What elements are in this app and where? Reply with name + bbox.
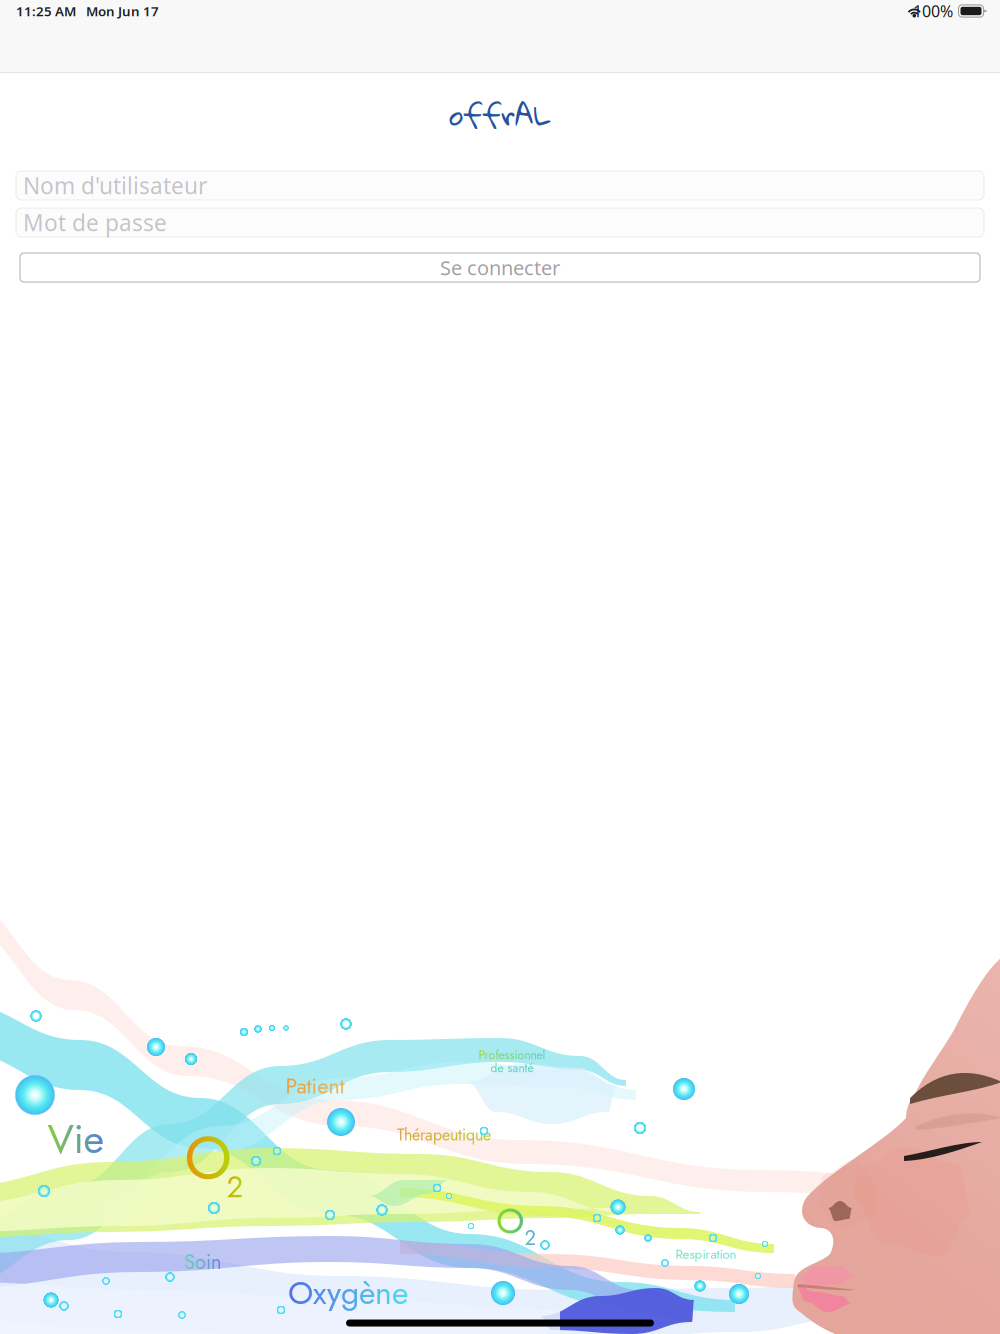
staticText: 11:25 AM xyxy=(16,2,76,20)
staticText: Mon Jun 17 xyxy=(86,2,159,20)
staticText: offrAL xyxy=(449,86,551,142)
button[interactable]: Mot de passe xyxy=(16,208,984,237)
button[interactable]: Se connecter xyxy=(0,237,1000,282)
staticText: Nom d'utilisateur xyxy=(23,170,207,200)
staticText: Mot de passe xyxy=(23,207,167,237)
button[interactable]: Nom d'utilisateur xyxy=(16,171,984,200)
staticText: 100% xyxy=(913,0,953,22)
staticText: Se connecter xyxy=(440,254,560,281)
